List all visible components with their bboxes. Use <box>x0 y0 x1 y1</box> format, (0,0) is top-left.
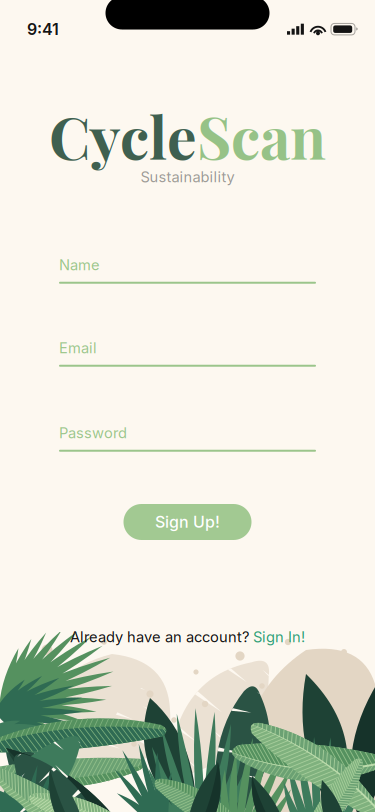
button[interactable]: Email <box>59 339 316 367</box>
staticText: Scan <box>197 96 326 174</box>
staticText: Password <box>59 424 127 442</box>
staticText: Cycle <box>49 96 197 174</box>
button[interactable]: Name <box>59 256 316 284</box>
button[interactable]: Password <box>59 424 316 452</box>
button[interactable]: Sign In! <box>253 628 305 646</box>
staticText: Already have an account? <box>70 628 253 646</box>
staticText: Sustainability <box>140 168 234 186</box>
staticText: Sign In! <box>253 628 305 646</box>
button[interactable]: Sign Up! <box>123 504 251 540</box>
staticText: Email <box>59 339 97 357</box>
staticText: 9:41 <box>27 19 59 39</box>
staticText: Sign Up! <box>155 512 220 532</box>
staticText: Name <box>59 256 100 274</box>
